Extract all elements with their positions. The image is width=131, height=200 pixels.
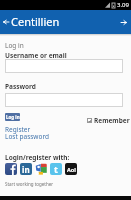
button[interactable]: Google Plus bbox=[35, 163, 47, 175]
staticText: Aol bbox=[67, 166, 76, 173]
staticText: 3.09 bbox=[117, 1, 129, 9]
staticText: Log in bbox=[6, 114, 20, 120]
staticText: Login/register with: bbox=[5, 153, 70, 162]
button[interactable]: Back bbox=[0, 16, 12, 28]
staticText: Username or email bbox=[5, 51, 67, 60]
staticText: in bbox=[22, 164, 30, 175]
staticText: Centillien bbox=[11, 14, 60, 29]
button[interactable]: Facebook bbox=[5, 163, 17, 175]
button[interactable]: Remember bbox=[87, 116, 130, 125]
button[interactable]: Register bbox=[5, 125, 31, 134]
button[interactable]: LinkedIn bbox=[20, 163, 32, 175]
staticText: Start working together bbox=[5, 181, 54, 187]
staticText: Log in bbox=[5, 41, 24, 50]
button[interactable] bbox=[5, 59, 123, 73]
button[interactable]: Log in bbox=[5, 113, 20, 121]
staticText: Remember bbox=[94, 116, 130, 125]
button[interactable]: Forward bbox=[118, 16, 130, 28]
staticText: t bbox=[54, 163, 58, 175]
button[interactable]: Lost password bbox=[5, 132, 49, 141]
button[interactable]: Aol bbox=[65, 163, 77, 175]
button[interactable] bbox=[5, 93, 123, 107]
staticText: Password bbox=[5, 82, 36, 91]
button[interactable]: Twitter bbox=[50, 163, 62, 175]
